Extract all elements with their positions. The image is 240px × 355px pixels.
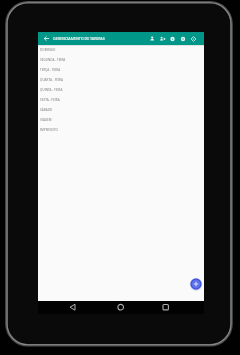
staticText: TERÇA - FEIRA [40, 68, 61, 72]
button[interactable] [94, 301, 149, 314]
staticText: SEGUNDA - FEIRA [40, 58, 66, 62]
staticText: DOMINGO [40, 48, 56, 52]
button[interactable]: IMPREVISTO [38, 125, 204, 135]
button[interactable]: TERÇA - FEIRA [38, 65, 204, 75]
staticText: QUINTA - FEIRA [40, 88, 63, 92]
button[interactable] [148, 34, 200, 44]
button[interactable]: VIAGEM [38, 115, 204, 125]
button[interactable]: DOMINGO [38, 45, 204, 55]
staticText: SEXTA - FEIRA [40, 98, 60, 102]
staticText: SÁBADO [40, 108, 53, 112]
button[interactable]: QUARTA - FEIRA [38, 75, 204, 85]
staticText: IMPREVISTO [40, 128, 59, 132]
button[interactable] [38, 301, 94, 314]
button[interactable] [149, 301, 204, 314]
staticText: GERENCIAMENTO DE TAREFAS [53, 36, 105, 41]
button[interactable]: SEGUNDA - FEIRA [38, 55, 204, 65]
button[interactable]: SÁBADO [38, 105, 204, 115]
staticText: QUARTA - FEIRA [40, 78, 63, 82]
button[interactable] [190, 278, 202, 290]
button[interactable]: SEXTA - FEIRA [38, 95, 204, 105]
button[interactable]: QUINTA - FEIRA [38, 85, 204, 95]
staticText: VIAGEM [40, 118, 52, 122]
button[interactable] [43, 35, 50, 42]
